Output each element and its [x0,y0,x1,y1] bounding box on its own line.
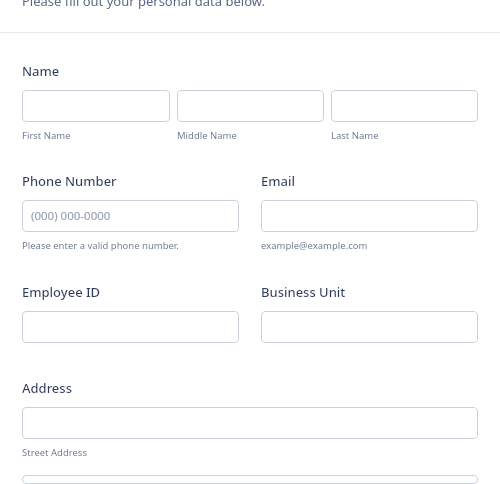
button[interactable] [261,311,478,343]
staticText: Please fill out your personal data below… [22,0,265,10]
button[interactable] [331,90,478,122]
button[interactable] [22,475,478,484]
staticText: Name [22,62,60,80]
staticText: First Name [22,129,71,142]
button[interactable] [261,200,478,232]
button[interactable] [177,90,324,122]
button[interactable] [22,407,478,439]
staticText: Middle Name [177,129,237,142]
staticText: example@example.com [261,239,368,252]
staticText: Please enter a valid phone number. [22,239,179,252]
button[interactable] [22,311,239,343]
button[interactable]: (000) 000-0000 [22,200,239,232]
staticText: Email [261,172,296,190]
staticText: Employee ID [22,283,101,301]
button[interactable] [22,90,170,122]
staticText: (000) 000-0000 [31,208,111,224]
staticText: Phone Number [22,172,117,190]
staticText: Address [22,379,72,397]
staticText: Street Address [22,446,87,459]
staticText: Last Name [331,129,379,142]
staticText: Business Unit [261,283,346,301]
